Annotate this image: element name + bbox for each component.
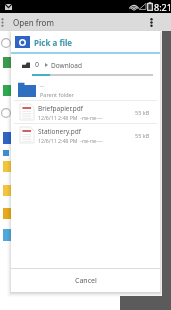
staticText: Open from	[13, 17, 54, 28]
button[interactable]: Stationery.pdf	[11, 124, 160, 146]
staticText: Pick a file	[34, 37, 73, 48]
staticText: Briefpapier.pdf	[38, 104, 84, 113]
staticText: 12/6/11 2:48 PM -rw-rw----	[38, 114, 103, 121]
staticText: Stationery.pdf	[38, 127, 81, 136]
button[interactable]: Cancel	[11, 269, 160, 292]
staticText: 55 kB	[135, 109, 150, 116]
button[interactable]: Briefpapier.pdf	[11, 101, 160, 123]
staticText: 0	[35, 60, 40, 70]
staticText: Parent folder	[40, 91, 74, 98]
staticText: 55 kB	[135, 132, 150, 139]
staticText: ..	[40, 80, 44, 90]
button[interactable]: ..	[11, 78, 160, 100]
button[interactable]: 0	[11, 58, 160, 72]
staticText: 8:21	[154, 1, 171, 13]
staticText: Cancel	[75, 276, 97, 286]
staticText: Download	[51, 61, 82, 70]
other: Overflow menu	[150, 18, 153, 27]
button[interactable]: Pick a file	[11, 31, 160, 53]
other: More options	[1, 18, 4, 27]
staticText: 12/6/11 2:48 PM -rw-rw----	[38, 137, 103, 144]
